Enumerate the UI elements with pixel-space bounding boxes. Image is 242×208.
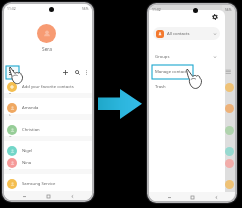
staticText: Add your favorite contacts bbox=[22, 84, 74, 90]
staticText: All contacts bbox=[167, 31, 190, 37]
button[interactable]: Back bbox=[68, 192, 76, 200]
staticText: Sera bbox=[42, 46, 52, 53]
staticText: S bbox=[9, 167, 11, 171]
button[interactable]: All contacts bbox=[153, 27, 220, 40]
staticText: Christian bbox=[22, 127, 40, 133]
staticText: 56% bbox=[82, 7, 89, 11]
button[interactable]: Settings bbox=[210, 12, 220, 22]
staticText: A bbox=[9, 91, 12, 95]
staticText: Nigel bbox=[22, 148, 33, 154]
button[interactable]: Home bbox=[188, 193, 196, 201]
button[interactable]: Trash bbox=[152, 82, 186, 91]
button[interactable]: Add your favorite contacts bbox=[4, 81, 92, 93]
button[interactable]: Back bbox=[212, 193, 220, 201]
button[interactable]: Amanda bbox=[4, 102, 92, 114]
staticText: Trash bbox=[155, 84, 166, 90]
staticText: Amanda bbox=[22, 105, 39, 111]
staticText: C bbox=[9, 113, 12, 117]
button[interactable]: Samsung Service bbox=[4, 178, 92, 190]
button[interactable]: Menu bbox=[6, 67, 17, 78]
button[interactable]: Nina bbox=[4, 157, 92, 169]
button[interactable]: Home bbox=[44, 192, 52, 200]
button[interactable]: Groups bbox=[149, 52, 220, 62]
staticText: Groups bbox=[155, 54, 170, 60]
staticText: 11:32 bbox=[7, 6, 16, 11]
staticText: N bbox=[9, 134, 12, 138]
staticText: 11:32 bbox=[152, 7, 161, 12]
button[interactable]: Manage contacts bbox=[152, 65, 193, 79]
button[interactable]: Search bbox=[73, 68, 82, 77]
button[interactable]: Nigel bbox=[4, 145, 92, 157]
button[interactable]: Add bbox=[61, 68, 70, 77]
button[interactable]: Recents bbox=[165, 193, 173, 201]
button[interactable]: More options bbox=[82, 68, 91, 77]
staticText: 56% bbox=[225, 8, 232, 12]
button[interactable]: Christian bbox=[4, 124, 92, 136]
staticText: Nina bbox=[22, 160, 32, 166]
staticText: Samsung Service bbox=[22, 181, 56, 187]
staticText: Manage contacts bbox=[155, 69, 189, 75]
button[interactable]: Recents bbox=[20, 192, 28, 200]
